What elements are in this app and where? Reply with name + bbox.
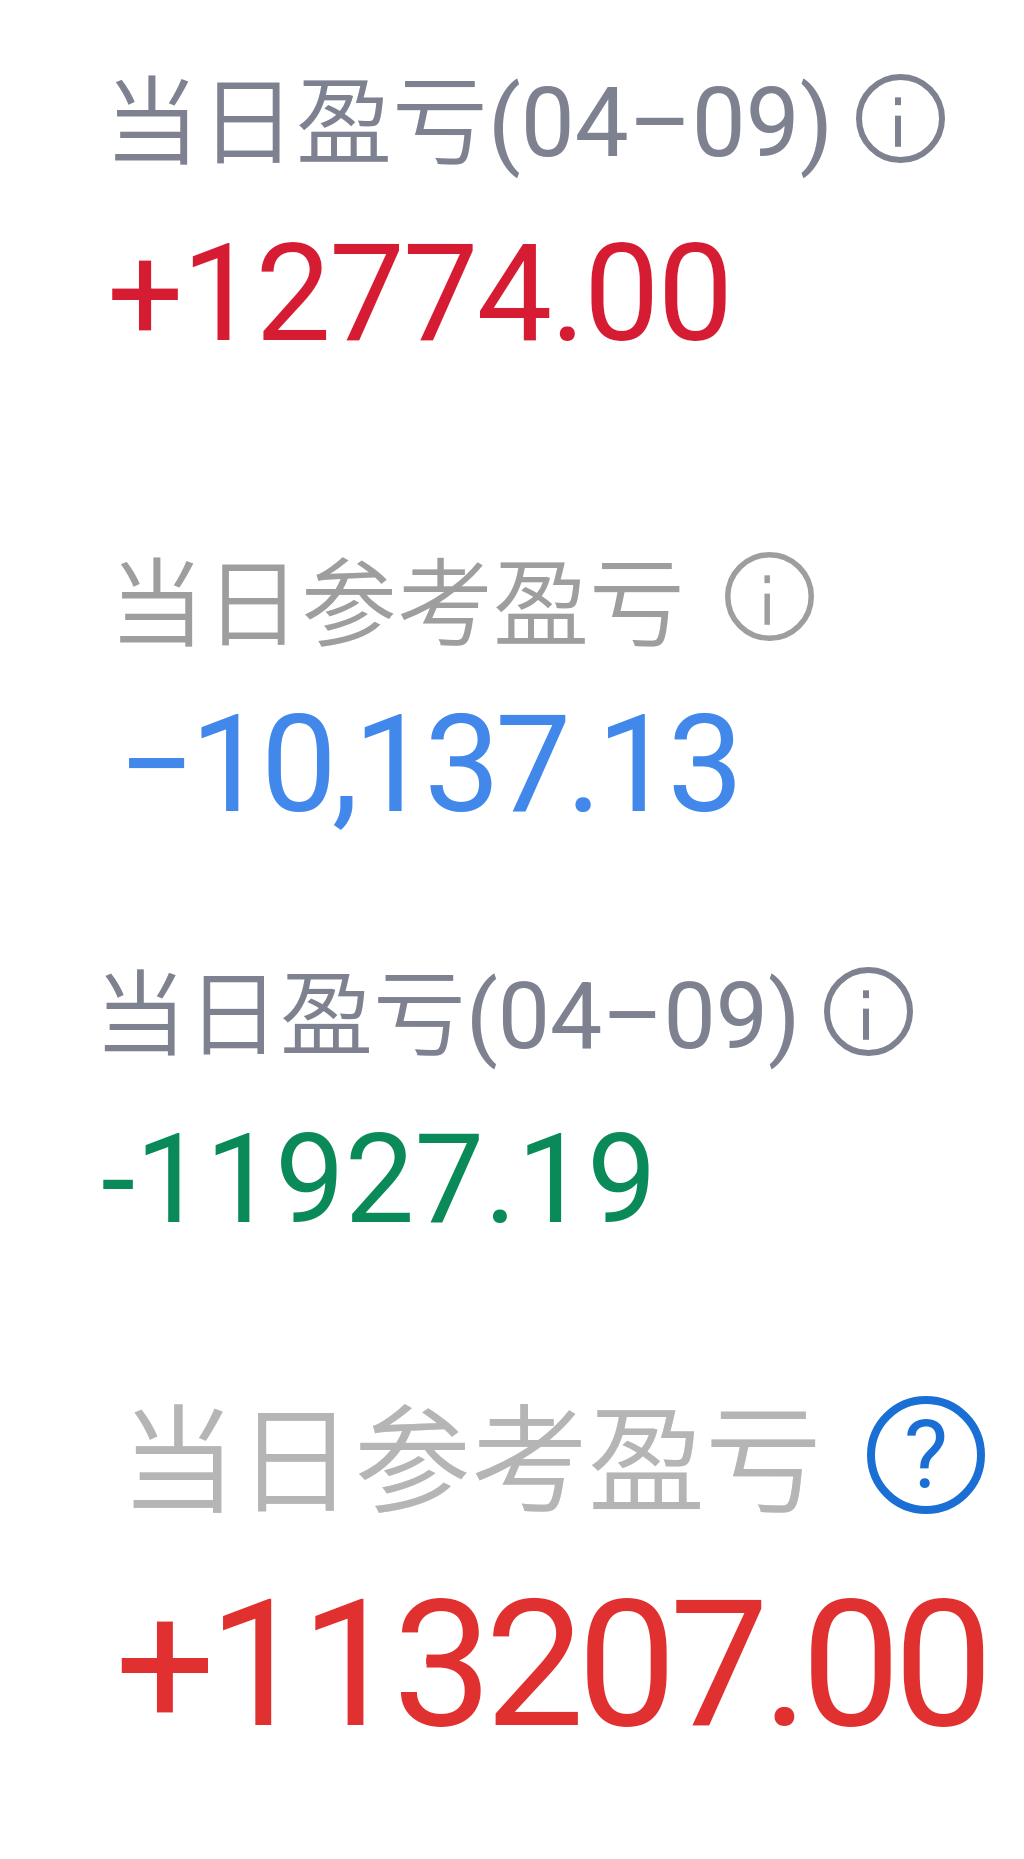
staticText: 当日参考盈亏 xyxy=(120,1367,823,1536)
staticText: 当日盈亏(04–09) xyxy=(94,940,801,1075)
staticText: -11927.19 xyxy=(101,1107,657,1252)
staticText: 当日参考盈亏 xyxy=(109,527,685,666)
button[interactable]: 当日参考盈亏 xyxy=(120,1367,985,1536)
button[interactable]: 当日盈亏(04–09) xyxy=(104,45,945,184)
button[interactable]: Info about daily profit and loss xyxy=(856,74,945,163)
button[interactable]: 当日盈亏(04–09) xyxy=(94,940,913,1075)
button[interactable]: 当日参考盈亏 xyxy=(109,527,814,666)
staticText: −10,137.13 xyxy=(118,686,739,844)
staticText: ? xyxy=(867,1400,985,1518)
staticText: +113207.00 xyxy=(115,1561,986,1768)
staticText: 当日盈亏(04–09) xyxy=(104,45,834,184)
button[interactable]: Help about reference daily profit and lo… xyxy=(867,1396,985,1514)
staticText: +12774.00 xyxy=(107,215,732,373)
button[interactable]: Info about reference daily profit and lo… xyxy=(725,552,814,641)
button[interactable]: Info about daily profit and loss xyxy=(824,967,913,1056)
